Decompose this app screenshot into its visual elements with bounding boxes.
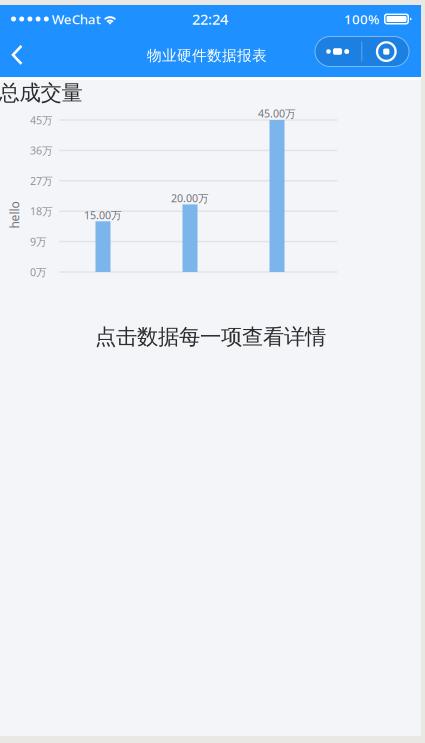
staticText: 22:24 [192, 9, 228, 29]
staticText: hello [1, 207, 28, 223]
staticText: 0万 [30, 265, 47, 279]
staticText: 20.00万 [171, 191, 209, 205]
staticText: 总成交量 [0, 80, 82, 106]
staticText: 27万 [30, 174, 53, 188]
staticText: 9万 [30, 234, 47, 249]
staticText: WeChat [49, 10, 101, 28]
button[interactable]: Back [0, 33, 43, 77]
staticText: 点击数据每一项查看详情 [95, 324, 326, 350]
staticText: 18万 [30, 204, 53, 218]
button[interactable]: 点击数据每一项查看详情 [0, 321, 421, 353]
staticText: 100% [344, 10, 379, 28]
staticText: 15.00万 [84, 208, 122, 222]
staticText: 物业硬件数据报表 [147, 46, 267, 64]
staticText: 45万 [30, 113, 53, 127]
staticText: 36万 [30, 143, 53, 157]
button[interactable]: More options [315, 33, 409, 77]
staticText: 45.00万 [258, 106, 296, 120]
